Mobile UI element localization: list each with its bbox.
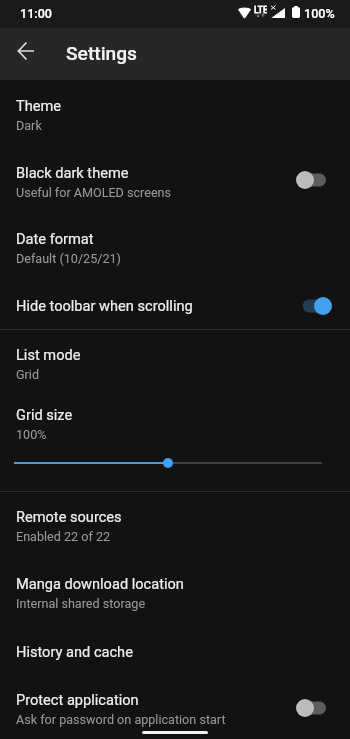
button[interactable]: List mode — [0, 330, 350, 390]
button[interactable]: Navigate up — [6, 31, 46, 71]
staticText: List mode — [16, 346, 81, 363]
staticText: Useful for AMOLED screens — [16, 185, 172, 200]
staticText: Remote sources — [16, 508, 122, 525]
staticText: 11:00 — [20, 6, 52, 21]
button[interactable]: Remote sources — [0, 492, 350, 559]
button[interactable]: Hide toolbar when scrolling — [0, 280, 350, 330]
button[interactable]: Date format — [0, 213, 350, 280]
staticText: Hide toolbar when scrolling — [16, 297, 193, 314]
staticText: Ask for password on application start — [16, 712, 226, 727]
staticText: Date format — [16, 230, 94, 247]
staticText: History and cache — [16, 643, 133, 660]
staticText: 100% — [304, 6, 335, 21]
button[interactable]: Theme — [0, 80, 350, 147]
staticText: Internal shared storage — [16, 596, 146, 611]
button[interactable]: History and cache — [0, 627, 350, 676]
staticText: Default (10/25/21) — [16, 251, 121, 266]
staticText: Grid — [16, 367, 40, 382]
staticText: LTE — [254, 5, 267, 15]
staticText: Settings — [66, 42, 138, 65]
button[interactable]: Protect application — [0, 675, 350, 727]
staticText: 100% — [16, 427, 47, 442]
button[interactable]: Grid size — [0, 390, 350, 474]
staticText: Black dark theme — [16, 164, 129, 181]
staticText: Dark — [16, 118, 42, 133]
button[interactable]: Black dark theme — [0, 147, 350, 213]
staticText: Enabled 22 of 22 — [16, 529, 111, 544]
staticText: Protect application — [16, 691, 139, 708]
staticText: Grid size — [16, 406, 73, 423]
staticText: Theme — [16, 97, 62, 114]
staticText: Manga download location — [16, 575, 184, 592]
button[interactable]: Manga download location — [0, 559, 350, 626]
